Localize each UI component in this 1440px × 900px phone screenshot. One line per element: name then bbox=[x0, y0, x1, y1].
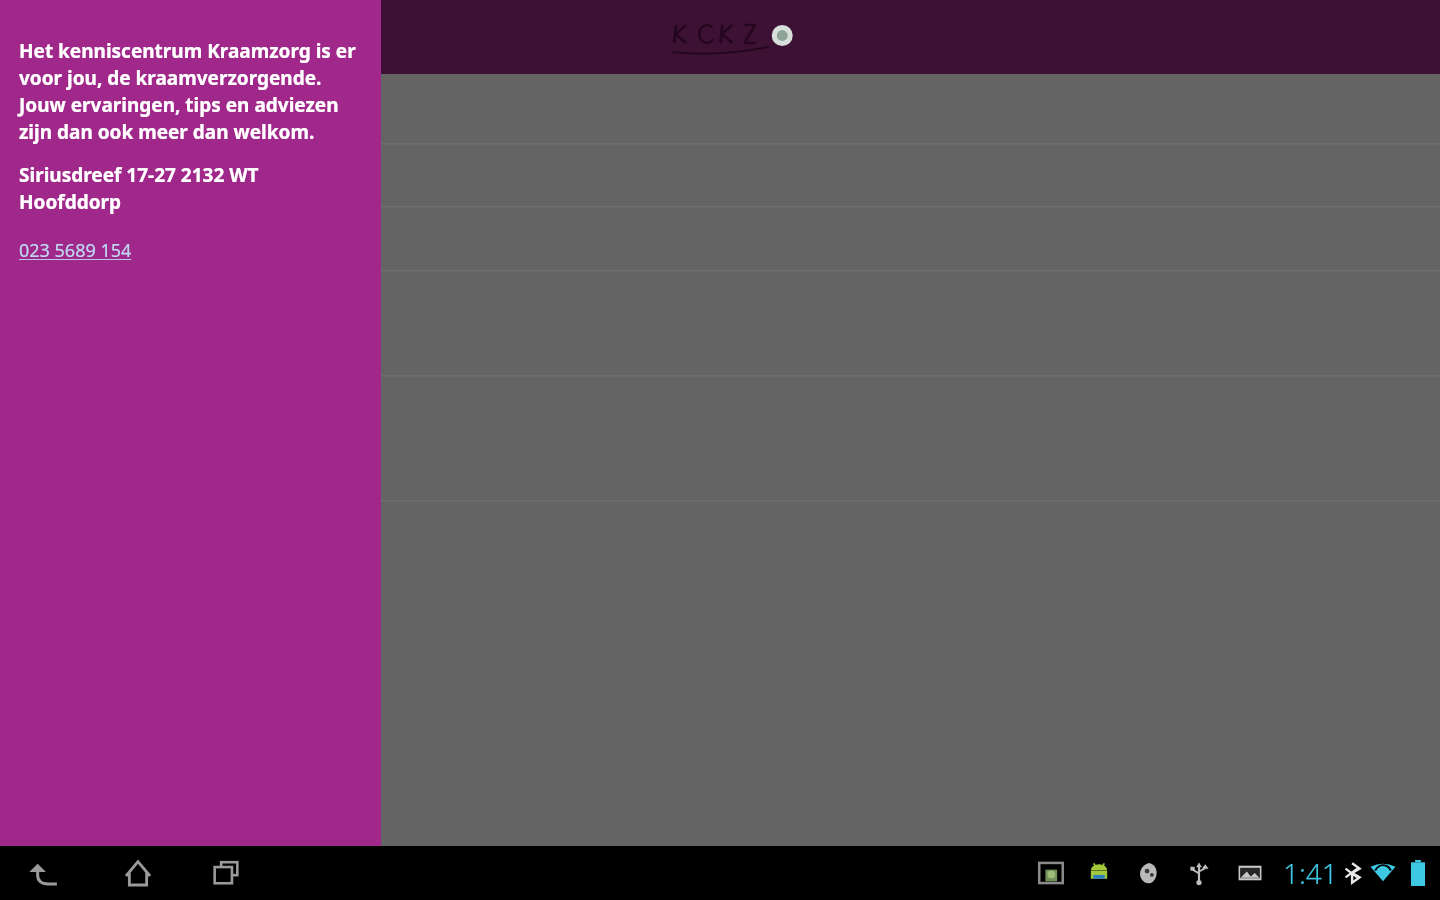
staticText: 023 5689 154 bbox=[19, 238, 132, 263]
button[interactable]: Home bbox=[113, 853, 163, 893]
staticText: 1:41 bbox=[1283, 854, 1338, 892]
button[interactable]: Recent apps bbox=[201, 853, 251, 893]
button[interactable]: Back bbox=[22, 853, 72, 893]
button[interactable]: 023 5689 154 bbox=[19, 238, 132, 263]
staticText: Siriusdreef 17-27 2132 WT Hoofddorp bbox=[19, 162, 361, 214]
staticText: Het kenniscentrum Kraamzorg is er voor j… bbox=[19, 38, 361, 144]
other: KCKZ logo bbox=[668, 12, 804, 62]
